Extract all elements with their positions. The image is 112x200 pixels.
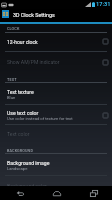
button[interactable]: Text texture — [0, 83, 112, 105]
staticText: 3D Clock Settings — [13, 12, 55, 18]
staticText: 12-hour clock — [7, 39, 38, 45]
button[interactable]: Toggle Show AM/PM indicator — [98, 52, 112, 72]
staticText: Text color — [7, 131, 30, 137]
staticText: BACKGROUND — [7, 148, 33, 152]
staticText: Background image — [7, 160, 50, 166]
button[interactable]: Text color — [0, 124, 112, 143]
button[interactable]: Toggle 12-hour clock — [98, 32, 112, 51]
staticText: Use color instead of texture for text — [7, 116, 73, 121]
button[interactable]: Use text color — [0, 105, 112, 125]
button[interactable]: 3D Clock Settings — [0, 9, 112, 22]
staticText: TEXT — [7, 77, 17, 81]
staticText: Background color — [7, 183, 47, 189]
staticText: Use text color — [7, 110, 39, 116]
staticText: Show AM/PM indicator — [7, 59, 60, 65]
button[interactable]: Home — [38, 186, 75, 200]
button[interactable]: Back — [0, 186, 38, 200]
button[interactable]: Show AM/PM indicator — [0, 52, 112, 72]
staticText: CLOCK — [7, 26, 20, 30]
button[interactable]: Background image — [0, 154, 112, 176]
staticText: 17:31 — [96, 1, 111, 8]
button[interactable]: Recent apps — [75, 186, 112, 200]
button[interactable]: Toggle Use text color — [98, 105, 112, 125]
button[interactable]: 12-hour clock — [0, 32, 112, 51]
staticText: Landscape — [7, 166, 28, 171]
button[interactable]: Background color — [0, 175, 112, 196]
staticText: Text texture — [7, 89, 34, 95]
staticText: Blue — [7, 95, 16, 100]
